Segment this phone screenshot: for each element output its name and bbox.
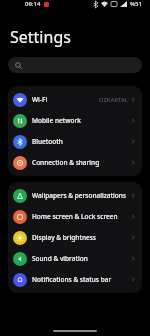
- staticText: OZKARTAL: [98, 96, 128, 104]
- staticText: Mobile network: [32, 116, 81, 125]
- staticText: Bluetooth: [32, 137, 63, 146]
- button[interactable]: Notifications & status bar: [8, 269, 142, 290]
- staticText: Display & brightness: [32, 233, 97, 242]
- button[interactable]: Wallpapers & personalizations: [8, 185, 142, 206]
- staticText: Wallpapers & personalizations: [32, 191, 127, 200]
- staticText: Connection & sharing: [32, 158, 100, 167]
- button[interactable]: Sound & vibration: [8, 248, 142, 269]
- staticText: Wi-Fi: [32, 95, 48, 104]
- staticText: 09:14: [25, 0, 41, 8]
- button[interactable]: Search settings: [8, 57, 142, 73]
- staticText: Home screen & Lock screen: [32, 212, 118, 221]
- staticText: Settings: [10, 26, 71, 48]
- button[interactable]: Wi-Fi: [8, 89, 142, 110]
- button[interactable]: Connection & sharing: [8, 152, 142, 173]
- staticText: %51: [130, 0, 142, 8]
- staticText: Notifications & status bar: [32, 275, 112, 284]
- button[interactable]: Home screen & Lock screen: [8, 206, 142, 227]
- staticText: Sound & vibration: [32, 254, 88, 263]
- button[interactable]: Bluetooth: [8, 131, 142, 152]
- button[interactable]: Mobile network: [8, 110, 142, 131]
- button[interactable]: Display & brightness: [8, 227, 142, 248]
